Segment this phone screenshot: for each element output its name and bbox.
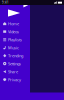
staticText: Music — [8, 45, 19, 50]
staticText: Settings — [8, 61, 21, 66]
staticText: Playlists — [8, 37, 22, 42]
button[interactable]: Home — [0, 20, 30, 28]
button[interactable]: Trending — [0, 52, 30, 60]
staticText: Share — [8, 69, 18, 74]
button[interactable]: Privacy — [0, 76, 30, 84]
button[interactable]: Settings — [0, 60, 30, 68]
button[interactable]: Playlists — [0, 36, 30, 44]
staticText: Trending — [8, 53, 23, 58]
staticText: Home — [8, 21, 19, 26]
button[interactable]: Share — [0, 68, 30, 76]
staticText: 9:41 — [2, 1, 9, 4]
button[interactable]: Music — [0, 44, 30, 52]
button[interactable]: Collapse menu — [21, 1, 30, 9]
button[interactable]: Videos — [0, 28, 30, 36]
staticText: Privacy — [8, 77, 21, 82]
staticText: Videos — [8, 29, 19, 34]
